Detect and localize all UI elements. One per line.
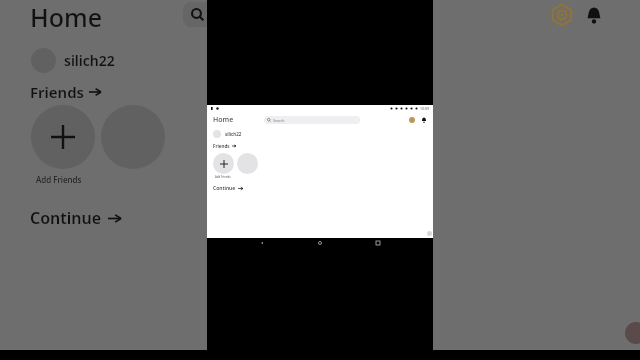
button[interactable] — [237, 153, 258, 174]
button[interactable]: Notifications — [420, 116, 427, 123]
staticText: Add Friends — [215, 175, 231, 179]
button[interactable]: Friends — [213, 143, 236, 149]
button[interactable]: Rewards — [408, 116, 415, 123]
staticText: Home — [30, 0, 103, 34]
button[interactable] — [213, 153, 234, 174]
button[interactable]: silich22 — [213, 130, 242, 138]
button[interactable] — [31, 105, 95, 169]
button[interactable]: Home — [317, 240, 323, 246]
staticText: Search — [273, 118, 285, 123]
staticText: Add Friends — [36, 174, 82, 185]
button[interactable]: Rewards — [549, 2, 575, 28]
staticText: Friends — [213, 143, 230, 149]
staticText: Friends — [30, 82, 84, 102]
button[interactable]: Back — [259, 240, 265, 246]
staticText: Home — [213, 115, 234, 125]
staticText: silich22 — [64, 51, 115, 70]
button[interactable]: Continue — [213, 185, 243, 192]
button[interactable] — [183, 2, 273, 27]
button[interactable]: Recents — [375, 240, 381, 246]
button[interactable]: Friends — [30, 82, 101, 102]
staticText: Continue — [30, 207, 102, 229]
staticText: 10:09 — [420, 106, 429, 111]
button[interactable]: Notifications — [581, 2, 607, 28]
staticText: Continue — [213, 185, 236, 192]
button[interactable]: Search — [264, 116, 360, 124]
button[interactable] — [101, 105, 165, 169]
button[interactable]: Continue — [30, 207, 121, 229]
staticText: silich22 — [225, 131, 242, 137]
